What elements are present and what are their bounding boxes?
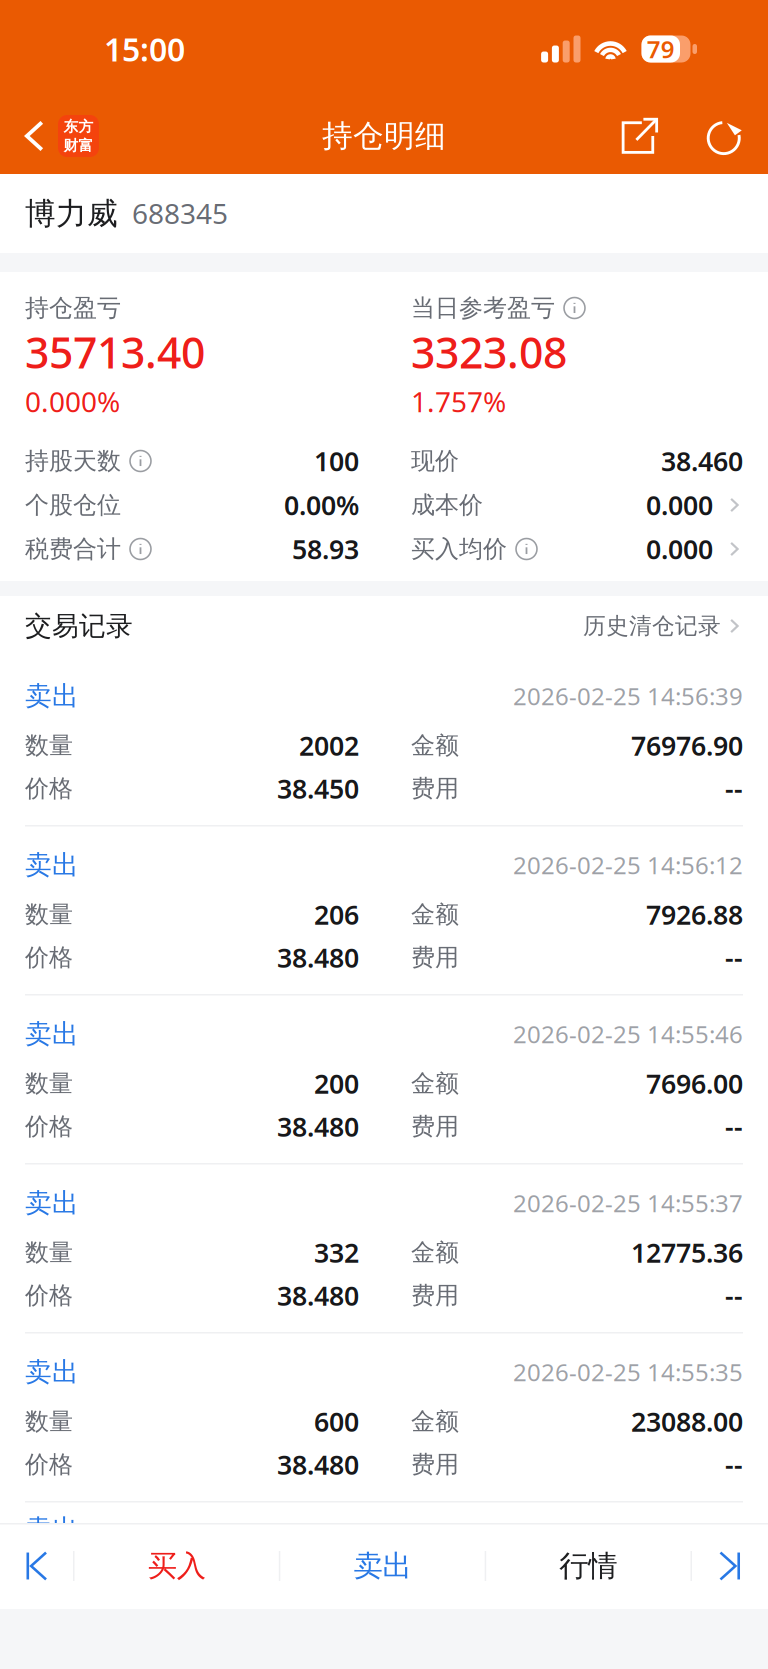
staticText: 东方 (63, 117, 93, 135)
staticText: -- (725, 771, 743, 806)
staticText: 成本价 (411, 490, 483, 520)
staticText: 费用 (411, 774, 459, 803)
button[interactable]: 卖出 (280, 1523, 485, 1609)
staticText: 数量 (25, 900, 73, 929)
staticText: 卖出 (25, 1513, 79, 1546)
staticText: 卖出 (25, 680, 79, 712)
staticText: 金额 (411, 1069, 459, 1098)
button[interactable]: 返回东方财富 (0, 98, 111, 174)
staticText: -- (725, 1278, 743, 1313)
staticText: 金额 (411, 1407, 459, 1436)
staticText: 7926.88 (646, 897, 743, 932)
staticText: 206 (314, 897, 359, 932)
staticText: 持仓明细 (322, 117, 446, 155)
staticText: 卖出 (25, 1018, 79, 1050)
staticText: 200 (314, 1066, 359, 1101)
staticText: 38.450 (277, 771, 359, 806)
staticText: 0.00% (284, 487, 359, 523)
staticText: 79 (647, 33, 675, 65)
staticText: 价格 (25, 943, 73, 972)
staticText: 38.460 (661, 443, 743, 479)
button[interactable]: 上一只 (0, 1523, 73, 1609)
staticText: 58.93 (292, 531, 359, 567)
staticText: 2026-02-25 14:55:46 (513, 1018, 743, 1050)
staticText: 0.000 (646, 531, 713, 567)
staticText: 历史清仓记录 (583, 612, 721, 640)
staticText: 12775.36 (631, 1235, 743, 1270)
staticText: 持仓盈亏 (25, 293, 121, 323)
staticText: 买入均价 (411, 534, 507, 564)
staticText: 38.480 (277, 1447, 359, 1482)
button[interactable]: 行情 (486, 1523, 690, 1609)
staticText: 688345 (132, 194, 228, 232)
staticText: -- (725, 1109, 743, 1144)
staticText: 1.757% (411, 383, 506, 420)
staticText: 卖出 (25, 1187, 79, 1219)
staticText: 38.480 (277, 940, 359, 975)
staticText: 15:00 (104, 28, 185, 70)
staticText: 600 (314, 1404, 359, 1439)
staticText: 0.000 (646, 487, 713, 523)
button[interactable]: 分享 (587, 98, 692, 174)
staticText: 个股仓位 (25, 490, 121, 520)
staticText: 费用 (411, 1281, 459, 1310)
staticText: 现价 (411, 446, 459, 476)
staticText: 数量 (25, 1069, 73, 1098)
staticText: 38.480 (277, 1109, 359, 1144)
staticText: -- (725, 940, 743, 975)
staticText: 35713.40 (25, 324, 205, 380)
staticText: 2026-02-25 14:55:37 (513, 1187, 743, 1219)
staticText: 76976.90 (631, 728, 743, 763)
staticText: 数量 (25, 1238, 73, 1267)
staticText: 税费合计 (25, 534, 121, 564)
button[interactable]: 历史清仓记录 (583, 590, 743, 662)
button[interactable]: 刷新 (692, 98, 758, 174)
staticText: 38.480 (277, 1278, 359, 1313)
staticText: 3323.08 (411, 324, 567, 380)
button[interactable]: 买入 (74, 1523, 279, 1609)
staticText: 7696.00 (646, 1066, 743, 1101)
staticText: 卖出 (25, 1356, 79, 1388)
staticText: 行情 (559, 1548, 617, 1584)
staticText: 持股天数 (25, 446, 121, 476)
button[interactable]: 下一只 (692, 1523, 768, 1609)
staticText: 费用 (411, 1450, 459, 1479)
staticText: 数量 (25, 731, 73, 760)
staticText: 23088.00 (631, 1404, 743, 1439)
staticText: 价格 (25, 1112, 73, 1141)
staticText: 金额 (411, 731, 459, 760)
staticText: 买入 (148, 1548, 206, 1584)
staticText: 332 (314, 1235, 359, 1270)
staticText: 财富 (63, 136, 93, 154)
staticText: 价格 (25, 774, 73, 803)
staticText: 交易记录 (25, 610, 133, 642)
staticText: 100 (314, 443, 359, 479)
staticText: 价格 (25, 1281, 73, 1310)
staticText: 2026-02-25 14:56:39 (513, 680, 743, 712)
staticText: 卖出 (25, 849, 79, 881)
staticText: 金额 (411, 900, 459, 929)
staticText: 0.000% (25, 383, 120, 420)
staticText: 2026-02-25 14:55:35 (513, 1356, 743, 1388)
staticText: 费用 (411, 943, 459, 972)
staticText: -- (725, 1447, 743, 1482)
staticText: 数量 (25, 1407, 73, 1436)
staticText: 费用 (411, 1112, 459, 1141)
staticText: 价格 (25, 1450, 73, 1479)
staticText: 2002 (299, 728, 359, 763)
staticText: 金额 (411, 1238, 459, 1267)
staticText: 博力威 (25, 195, 118, 233)
staticText: 卖出 (353, 1548, 411, 1584)
staticText: 当日参考盈亏 (411, 293, 555, 323)
staticText: 2026-02-25 14:56:12 (513, 849, 743, 881)
